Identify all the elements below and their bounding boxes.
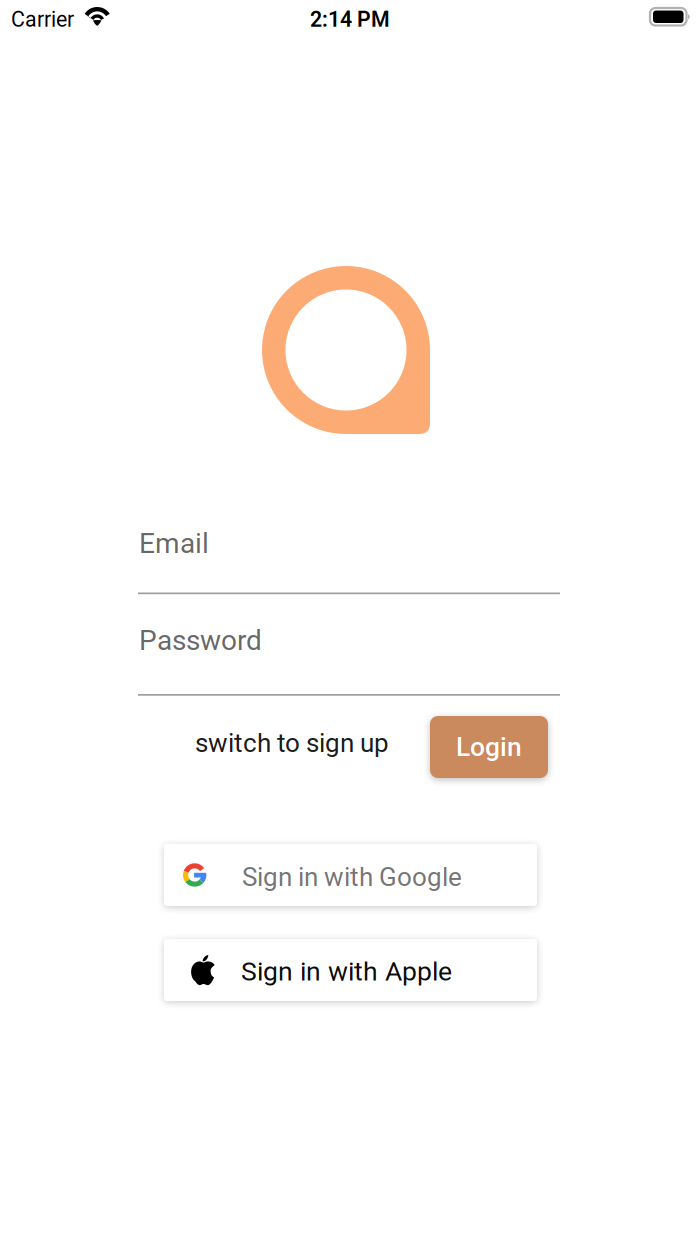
button[interactable]: Login (430, 716, 548, 778)
staticText: Login (456, 731, 522, 762)
staticText: Sign in with Google (242, 862, 462, 892)
staticText: Sign in with Apple (241, 956, 452, 987)
staticText: Password (139, 624, 262, 657)
staticText: 2:14 PM (310, 7, 390, 32)
button[interactable]: switch to sign up (181, 714, 403, 772)
staticText: Email (139, 527, 209, 560)
button[interactable]: Sign in with Google (164, 844, 537, 906)
staticText: Carrier (11, 7, 74, 32)
staticText: switch to sign up (195, 728, 389, 758)
button[interactable]: Sign in with Apple (164, 939, 537, 1001)
